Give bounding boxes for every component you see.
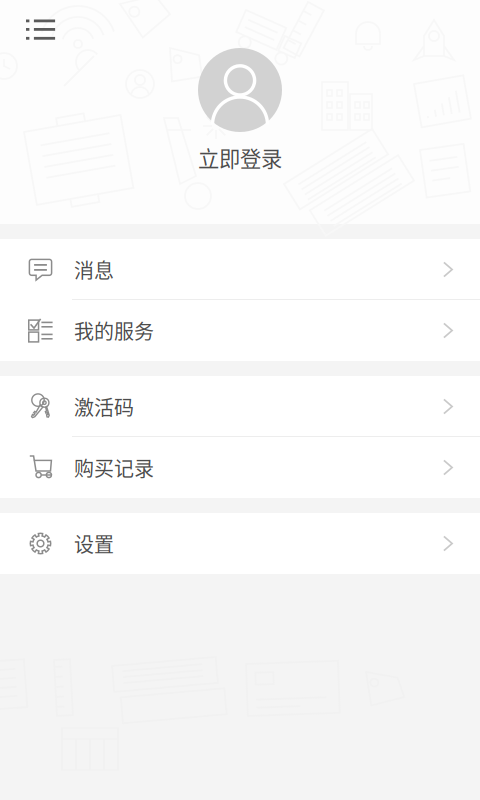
staticText: 设置: [74, 529, 114, 558]
staticText: 我的服务: [74, 316, 154, 345]
button[interactable]: Menu: [16, 8, 66, 52]
button[interactable]: 消息: [0, 239, 480, 300]
button[interactable]: 我的服务: [0, 300, 480, 361]
staticText: 立即登录: [198, 142, 282, 173]
staticText: 激活码: [74, 392, 134, 421]
button[interactable]: 激活码: [0, 376, 480, 437]
staticText: 购买记录: [74, 453, 154, 482]
button[interactable]: 设置: [0, 513, 480, 574]
staticText: 消息: [74, 255, 114, 284]
button[interactable]: 购买记录: [0, 437, 480, 498]
